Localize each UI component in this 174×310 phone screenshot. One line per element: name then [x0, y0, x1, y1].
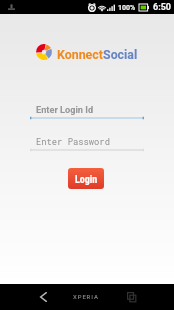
staticText: Enter Password — [36, 136, 110, 148]
button[interactable]: Enter Password — [30, 134, 144, 149]
button[interactable]: Enter Login Id — [30, 102, 144, 117]
button[interactable]: Back — [31, 285, 55, 309]
staticText: Social — [103, 47, 138, 62]
button[interactable]: Recent apps — [119, 285, 143, 309]
staticText: Login — [75, 174, 98, 186]
staticText: XPERIA — [73, 293, 99, 300]
staticText: 100% — [118, 4, 136, 12]
staticText: Konnect — [57, 47, 103, 62]
button[interactable]: Login — [68, 168, 104, 189]
staticText: Enter Login Id — [36, 104, 94, 115]
staticText: 6:50 — [153, 2, 172, 13]
